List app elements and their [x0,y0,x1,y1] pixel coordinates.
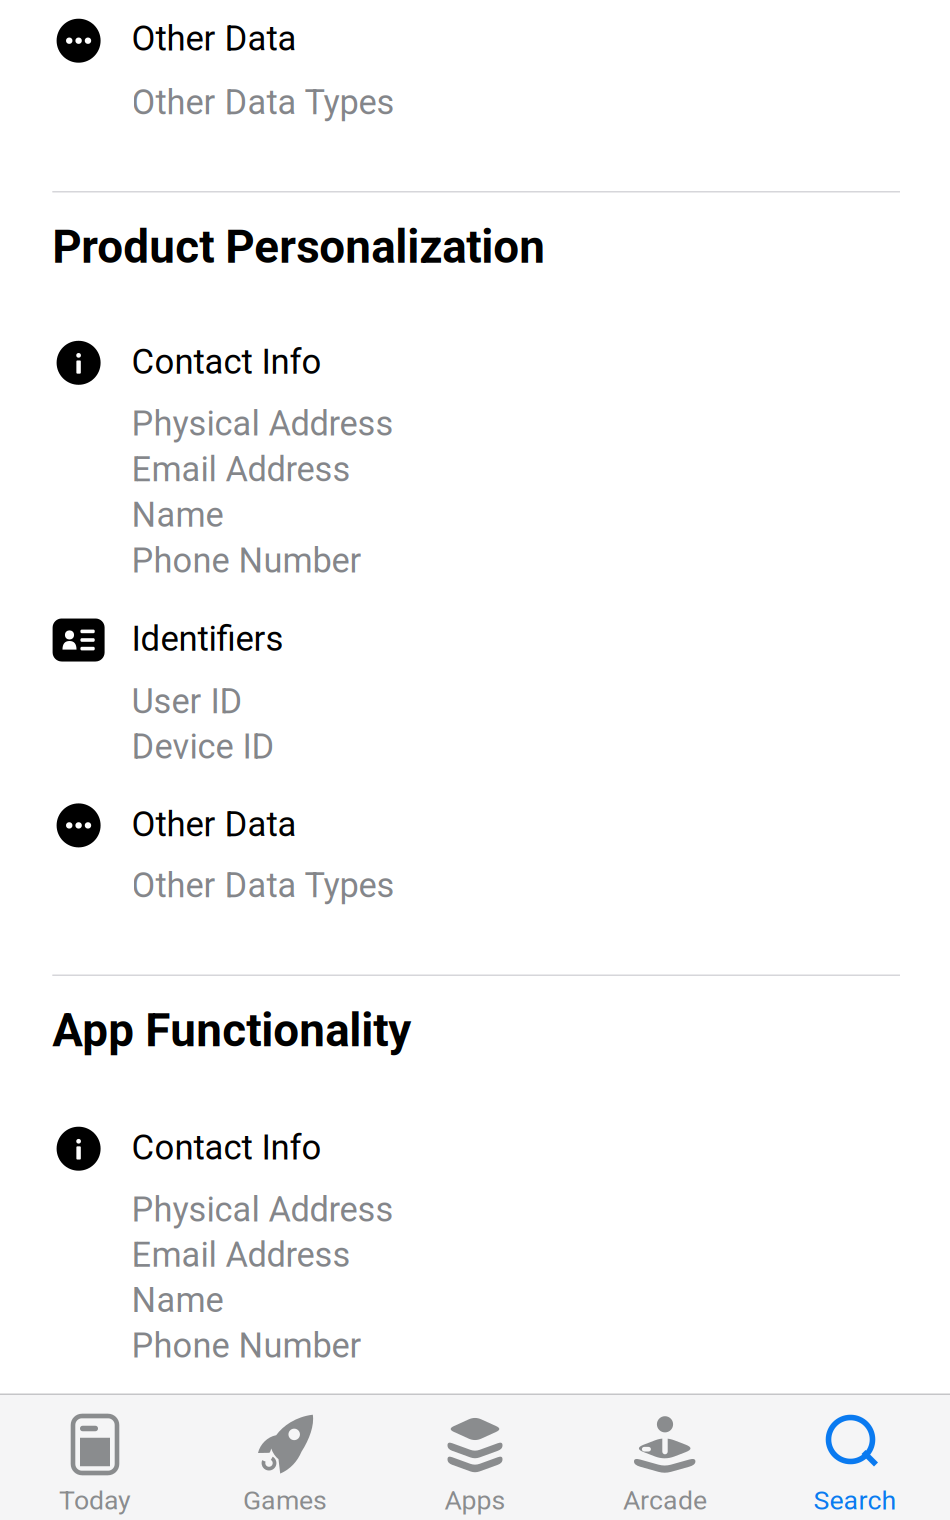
staticText: Today [59,1485,131,1516]
staticText: Games [243,1485,327,1516]
staticText: User ID [132,681,243,722]
staticText: Other Data Types [132,82,395,123]
staticText: Product Personalization [52,220,545,274]
staticText: App Functionality [52,1004,411,1057]
staticText: Physical Address [132,404,394,444]
staticText: Search [813,1485,896,1516]
button[interactable]: Games [190,1395,380,1520]
staticText: Email Address [132,1235,351,1275]
button[interactable]: Search [760,1395,950,1520]
staticText: Name [132,1280,224,1320]
staticText: Arcade [623,1485,707,1516]
staticText: Other Data [132,18,297,59]
button[interactable]: Apps [380,1395,570,1520]
button[interactable]: Arcade [570,1395,760,1520]
staticText: Contact Info [132,1127,322,1168]
staticText: Name [132,495,224,535]
staticText: Contact Info [132,341,322,382]
staticText: Apps [444,1485,505,1516]
staticText: Other Data Types [132,865,395,906]
staticText: Device ID [132,727,275,767]
staticText: Phone Number [132,540,362,581]
staticText: Other Data [132,804,297,845]
staticText: Physical Address [132,1190,394,1230]
staticText: Identifiers [132,619,284,659]
staticText: Email Address [132,449,351,490]
button[interactable]: Today [0,1395,190,1520]
staticText: Phone Number [132,1326,362,1366]
